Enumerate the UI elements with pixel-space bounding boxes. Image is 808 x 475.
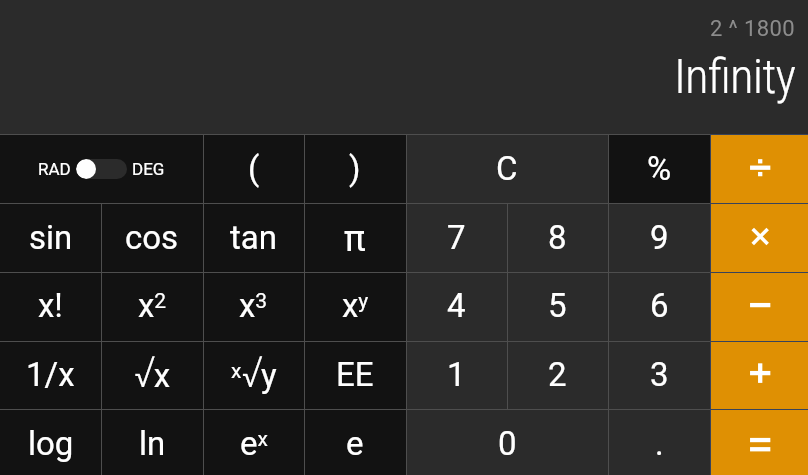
staticText: 0 bbox=[498, 424, 517, 463]
staticText: sin bbox=[29, 218, 73, 257]
staticText: cos bbox=[125, 218, 179, 257]
staticText: ex bbox=[240, 424, 268, 463]
button[interactable]: log bbox=[0, 410, 101, 475]
staticText: 5 bbox=[548, 286, 567, 325]
staticText: ln bbox=[139, 424, 166, 463]
staticText: 3 bbox=[650, 355, 669, 394]
button[interactable]: π bbox=[304, 204, 406, 273]
button[interactable]: cos bbox=[101, 204, 203, 273]
staticText: % bbox=[647, 149, 672, 188]
button[interactable]: EE bbox=[304, 341, 406, 410]
staticText: 2 bbox=[548, 355, 567, 394]
staticText: . bbox=[655, 424, 664, 463]
staticText: xy bbox=[342, 286, 369, 325]
button[interactable]: 3 bbox=[608, 341, 710, 410]
button[interactable]: C bbox=[406, 134, 608, 204]
button[interactable]: 2 bbox=[507, 341, 608, 410]
button[interactable]: % bbox=[608, 134, 710, 204]
button[interactable]: ex bbox=[203, 410, 304, 475]
staticText: DEG bbox=[132, 159, 165, 179]
button[interactable]: ( bbox=[203, 134, 304, 204]
staticText: π bbox=[344, 218, 366, 260]
staticText: 9 bbox=[650, 218, 669, 257]
staticText: 4 bbox=[447, 286, 466, 325]
button[interactable]: ln bbox=[101, 410, 203, 475]
staticText: 7 bbox=[447, 218, 466, 257]
button[interactable]: 5 bbox=[507, 272, 608, 341]
button[interactable]: tan bbox=[203, 204, 304, 273]
button[interactable]: 1 bbox=[406, 341, 507, 410]
button[interactable]: 0 bbox=[406, 410, 608, 475]
button[interactable]: 4 bbox=[406, 272, 507, 341]
button[interactable]: Plus bbox=[710, 341, 808, 410]
staticText: x2 bbox=[138, 286, 167, 325]
staticText: 1/x bbox=[26, 355, 75, 394]
staticText: EE bbox=[336, 355, 374, 394]
button[interactable]: x2 bbox=[101, 272, 203, 341]
staticText: 6 bbox=[650, 286, 669, 325]
button[interactable]: x√y bbox=[203, 341, 304, 410]
button[interactable]: e bbox=[304, 410, 406, 475]
button[interactable]: 8 bbox=[507, 204, 608, 273]
button[interactable]: Divide bbox=[710, 134, 808, 204]
staticText: x√y bbox=[231, 356, 277, 399]
staticText: 8 bbox=[548, 218, 567, 257]
button[interactable]: √x bbox=[101, 341, 203, 410]
button[interactable]: Minus bbox=[710, 272, 808, 341]
staticText: √x bbox=[134, 356, 171, 399]
button[interactable]: ) bbox=[304, 134, 406, 204]
staticText: C bbox=[496, 149, 518, 188]
button[interactable]: x3 bbox=[203, 272, 304, 341]
button[interactable]: sin bbox=[0, 204, 101, 273]
staticText: Infinity bbox=[674, 48, 796, 105]
staticText: e bbox=[346, 424, 364, 463]
staticText: 2 ^ 1800 bbox=[710, 16, 796, 42]
button[interactable]: Equals bbox=[710, 410, 808, 475]
button[interactable]: RAD bbox=[0, 134, 203, 204]
button[interactable]: xy bbox=[304, 272, 406, 341]
button[interactable]: 6 bbox=[608, 272, 710, 341]
staticText: x3 bbox=[239, 286, 268, 325]
staticText: 1 bbox=[447, 355, 466, 394]
staticText: ) bbox=[349, 149, 361, 188]
staticText: tan bbox=[230, 218, 277, 257]
button[interactable]: x! bbox=[0, 272, 101, 341]
button[interactable]: 1/x bbox=[0, 341, 101, 410]
staticText: x! bbox=[38, 286, 63, 325]
button[interactable]: Multiply bbox=[710, 204, 808, 273]
staticText: log bbox=[28, 424, 74, 463]
button[interactable]: 7 bbox=[406, 204, 507, 273]
button[interactable]: . bbox=[608, 410, 710, 475]
staticText: RAD bbox=[38, 159, 71, 179]
staticText: ( bbox=[248, 149, 260, 188]
button[interactable]: 9 bbox=[608, 204, 710, 273]
